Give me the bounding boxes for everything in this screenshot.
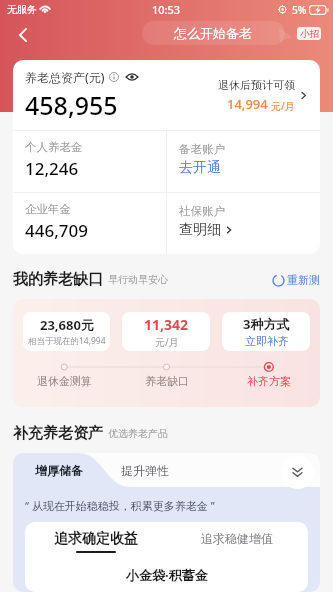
staticText: 个人养老金 [25, 140, 83, 154]
staticText: 元/月 [155, 335, 179, 349]
button[interactable]: 怎么开始备老 [142, 21, 292, 45]
button[interactable]: 备老账户 [167, 131, 320, 192]
button[interactable]: 退休后预计可领 [218, 78, 308, 113]
staticText: 备老账户 [179, 142, 225, 156]
staticText: 早行动早安心 [108, 273, 168, 286]
staticText: 12,246 [25, 157, 79, 180]
staticText: 重新测 [287, 273, 320, 287]
staticText: 23,680元 [40, 316, 94, 334]
button[interactable]: 重新测 [273, 273, 320, 287]
staticText: 退休后预计可领 [218, 78, 295, 92]
staticText: 立即补齐 [245, 334, 289, 348]
staticText: “ 从现在开始稳稳投，积累更多养老金 ” [25, 498, 215, 513]
button[interactable]: 个人养老金 [13, 131, 166, 192]
staticText: 补充养老资产 [13, 424, 103, 443]
button[interactable]: 小招 [297, 27, 321, 40]
staticText: 补齐方案 [247, 374, 291, 388]
staticText: 怎么开始备老 [174, 25, 252, 41]
staticText: 14,994 [227, 95, 268, 113]
staticText: 增厚储备 [35, 463, 83, 478]
button[interactable]: 11,342 [122, 312, 210, 351]
staticText: 提升弹性 [121, 463, 169, 478]
staticText: 退休金测算 [37, 374, 92, 388]
button[interactable]: 社保账户 [167, 193, 320, 254]
staticText: 无服务 [7, 3, 37, 16]
staticText: 11,342 [144, 315, 189, 334]
staticText: 458,955 [25, 88, 118, 122]
staticText: 养老总资产(元) [25, 69, 105, 85]
button[interactable]: Expand [281, 456, 314, 489]
staticText: 优选养老产品 [108, 427, 168, 440]
button[interactable]: 增厚储备 [13, 453, 105, 487]
staticText: 小招 [300, 28, 319, 40]
staticText: 446,709 [25, 219, 88, 242]
button[interactable]: 23,680元 [23, 312, 110, 351]
staticText: 社保账户 [179, 204, 225, 218]
staticText: 追求确定收益 [54, 530, 138, 548]
staticText: 去开通 [179, 159, 221, 177]
staticText: 3种方式 [243, 315, 290, 333]
button[interactable]: 追求确定收益 [25, 522, 166, 557]
button[interactable]: Info [109, 72, 119, 82]
button[interactable]: Toggle visibility [125, 72, 139, 82]
staticText: 小金袋·积蓄金 [126, 566, 208, 584]
staticText: 我的养老缺口 [13, 270, 103, 289]
button[interactable]: Back [8, 20, 37, 49]
staticText: 企业年金 [25, 202, 71, 216]
staticText: 查明细 [179, 221, 221, 239]
staticText: 追求稳健增值 [201, 531, 273, 546]
staticText: 10:53 [152, 2, 181, 17]
button[interactable]: 3种方式 [222, 312, 310, 351]
staticText: 5% [292, 3, 307, 17]
button[interactable]: 提升弹性 [105, 453, 185, 487]
button[interactable]: 追求稳健增值 [166, 522, 308, 557]
staticText: 相当于现在的14,994 [28, 335, 106, 347]
staticText: 元/月 [271, 99, 295, 113]
staticText: 养老缺口 [145, 374, 189, 388]
button[interactable]: 企业年金 [13, 193, 166, 254]
